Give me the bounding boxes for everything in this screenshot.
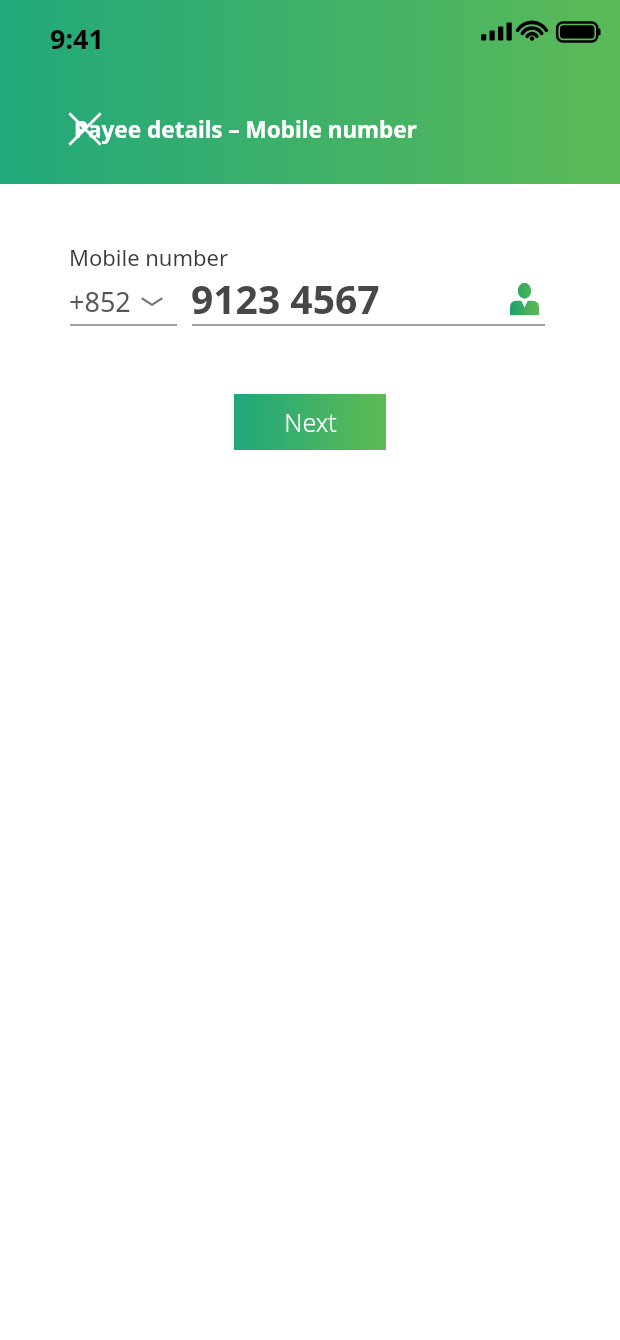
- staticText: Payee details – Mobile number: [74, 114, 417, 145]
- staticText: 9:41: [50, 20, 104, 57]
- button[interactable]: Choose from contacts: [498, 273, 550, 325]
- staticText: 9123 4567: [191, 272, 380, 325]
- button[interactable]: +852: [69, 276, 177, 326]
- button[interactable]: Next: [234, 394, 386, 450]
- staticText: Next: [284, 405, 337, 439]
- staticText: Mobile number: [69, 242, 229, 272]
- button[interactable]: Close: [59, 103, 111, 155]
- staticText: +852: [69, 283, 131, 320]
